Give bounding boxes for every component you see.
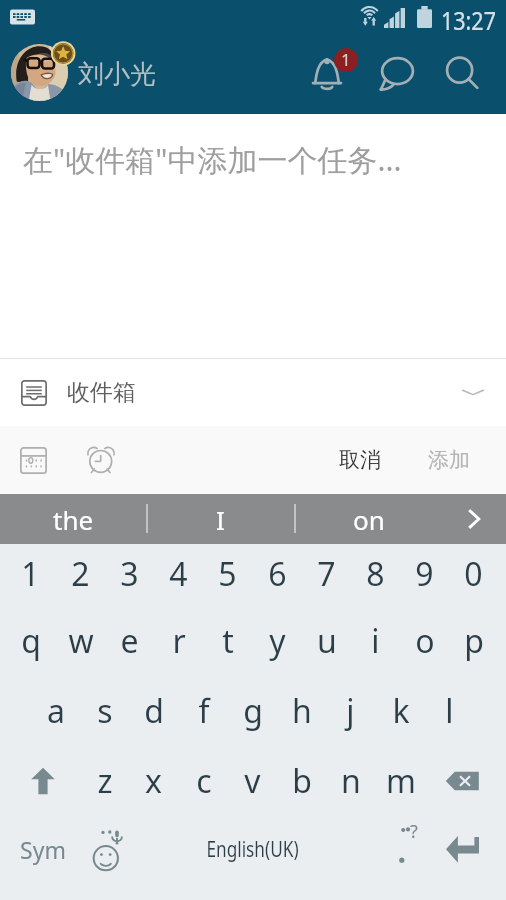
button[interactable]: Search xyxy=(440,50,482,92)
staticText: n xyxy=(341,759,361,803)
button[interactable]: Period and punctuation xyxy=(376,815,425,884)
button[interactable]: Notifications xyxy=(311,55,343,91)
staticText: x xyxy=(145,759,162,803)
button[interactable]: j xyxy=(326,676,375,745)
staticText: 添加 xyxy=(428,447,470,473)
button[interactable]: c xyxy=(179,746,228,815)
button[interactable]: 7 xyxy=(302,539,351,608)
button[interactable]: Emoji and voice input xyxy=(80,815,129,884)
staticText: u xyxy=(317,619,337,663)
staticText: 6 xyxy=(268,552,287,596)
staticText: r xyxy=(172,619,186,663)
staticText: 1 xyxy=(341,48,351,71)
staticText: 3 xyxy=(120,552,139,596)
staticText: 13:27 xyxy=(441,3,496,37)
button[interactable]: a xyxy=(31,676,80,745)
button[interactable]: n xyxy=(326,746,375,815)
staticText: l xyxy=(445,689,454,733)
staticText: 取消 xyxy=(339,447,381,473)
button[interactable]: 添加 xyxy=(410,426,488,494)
button[interactable]: r xyxy=(154,606,203,675)
staticText: 1 xyxy=(21,552,40,596)
button[interactable]: More suggestions xyxy=(442,494,506,544)
button[interactable]: Messages xyxy=(376,50,420,94)
button[interactable]: u xyxy=(302,606,351,675)
button[interactable]: 收件箱 xyxy=(0,359,506,426)
staticText: k xyxy=(392,689,410,733)
button[interactable]: s xyxy=(80,676,129,745)
staticText: 9 xyxy=(415,552,434,596)
staticText: i xyxy=(371,619,380,663)
button[interactable]: Profile xyxy=(11,44,68,101)
staticText: c xyxy=(196,759,212,803)
button[interactable]: g xyxy=(228,676,277,745)
button[interactable]: Shift xyxy=(6,746,80,815)
staticText: m xyxy=(386,759,416,803)
staticText: f xyxy=(198,689,210,733)
staticText: t xyxy=(222,619,234,663)
button[interactable]: i xyxy=(351,606,400,675)
button[interactable]: 5 xyxy=(203,539,252,608)
button[interactable]: p xyxy=(449,606,498,675)
button[interactable]: t xyxy=(203,606,252,675)
button[interactable]: Enter xyxy=(425,815,499,884)
button[interactable]: y xyxy=(253,606,302,675)
staticText: 收件箱 xyxy=(67,378,136,407)
button[interactable]: 2 xyxy=(56,539,105,608)
staticText: q xyxy=(21,619,41,663)
staticText: e xyxy=(120,619,139,663)
button[interactable]: d xyxy=(129,676,178,745)
staticText: the xyxy=(53,502,94,537)
button[interactable]: Reminder xyxy=(77,436,125,484)
button[interactable]: 9 xyxy=(400,539,449,608)
button[interactable]: o xyxy=(400,606,449,675)
button[interactable]: 6 xyxy=(253,539,302,608)
staticText: g xyxy=(243,689,263,733)
button[interactable]: Sym xyxy=(6,815,80,884)
button[interactable]: Due date xyxy=(9,436,57,484)
staticText: 在"收件箱"中添加一个任务... xyxy=(23,139,402,180)
button[interactable]: v xyxy=(228,746,277,815)
button[interactable]: w xyxy=(56,606,105,675)
staticText: 0 xyxy=(464,552,483,596)
button[interactable]: m xyxy=(376,746,425,815)
staticText: English(UK) xyxy=(206,835,299,864)
button[interactable]: k xyxy=(376,676,425,745)
staticText: 8 xyxy=(366,552,385,596)
staticText: 5 xyxy=(218,552,237,596)
staticText: 刘小光 xyxy=(78,58,156,91)
staticText: on xyxy=(353,502,385,537)
staticText: s xyxy=(97,689,113,733)
button[interactable]: 8 xyxy=(351,539,400,608)
button[interactable]: the xyxy=(0,494,147,544)
staticText: y xyxy=(269,619,286,663)
staticText: o xyxy=(415,619,435,663)
staticText: a xyxy=(47,689,65,733)
button[interactable]: f xyxy=(179,676,228,745)
staticText: ? xyxy=(410,819,418,844)
button[interactable]: 1 xyxy=(6,539,55,608)
button[interactable]: on xyxy=(295,494,442,544)
button[interactable]: b xyxy=(277,746,326,815)
button[interactable]: e xyxy=(105,606,154,675)
button[interactable]: 取消 xyxy=(322,426,398,494)
staticText: b xyxy=(292,759,312,803)
staticText: d xyxy=(144,689,164,733)
staticText: 2 xyxy=(71,552,90,596)
staticText: v xyxy=(244,759,261,803)
staticText: p xyxy=(464,619,484,663)
staticText: j xyxy=(346,689,355,733)
button[interactable]: x xyxy=(129,746,178,815)
staticText: I xyxy=(216,502,225,537)
button[interactable]: 3 xyxy=(105,539,154,608)
button[interactable]: h xyxy=(277,676,326,745)
button[interactable]: l xyxy=(425,676,474,745)
button[interactable]: I xyxy=(147,494,294,544)
button[interactable]: q xyxy=(6,606,55,675)
button[interactable]: 0 xyxy=(449,539,498,608)
button[interactable]: z xyxy=(80,746,129,815)
staticText: Sym xyxy=(20,834,66,865)
button[interactable]: Backspace xyxy=(425,746,499,815)
button[interactable]: 4 xyxy=(154,539,203,608)
button[interactable]: English(UK) xyxy=(129,815,375,884)
